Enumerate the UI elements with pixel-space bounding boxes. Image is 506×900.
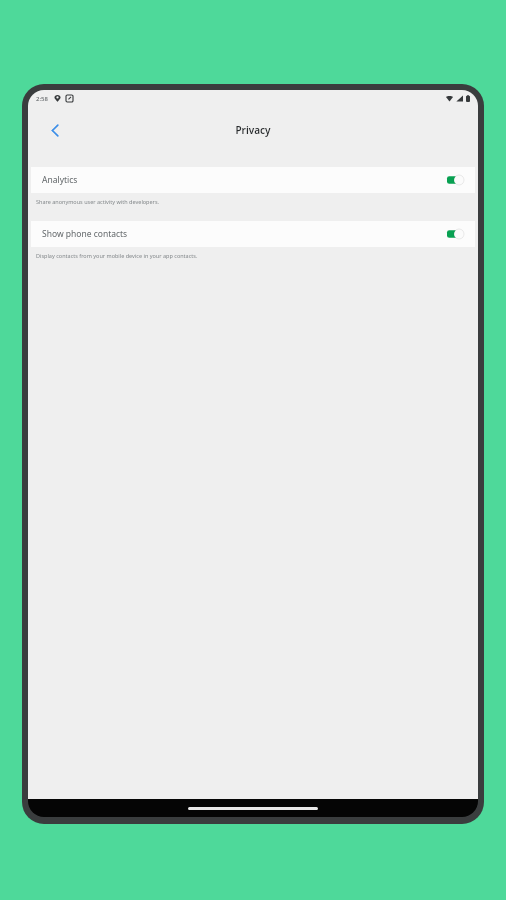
- staticText: Show phone contacts: [42, 228, 446, 240]
- button[interactable]: Toggle: [446, 228, 466, 240]
- button[interactable]: Analytics: [31, 167, 475, 193]
- button[interactable]: Show phone contacts: [31, 221, 475, 247]
- staticText: Share anonymous user activity with devel…: [36, 198, 159, 205]
- staticText: Privacy: [235, 123, 271, 137]
- button[interactable]: Toggle: [446, 174, 466, 186]
- staticText: Analytics: [42, 174, 446, 186]
- button[interactable]: Back: [40, 115, 70, 145]
- staticText: Display contacts from your mobile device…: [36, 252, 198, 259]
- staticText: 2:58: [36, 95, 48, 103]
